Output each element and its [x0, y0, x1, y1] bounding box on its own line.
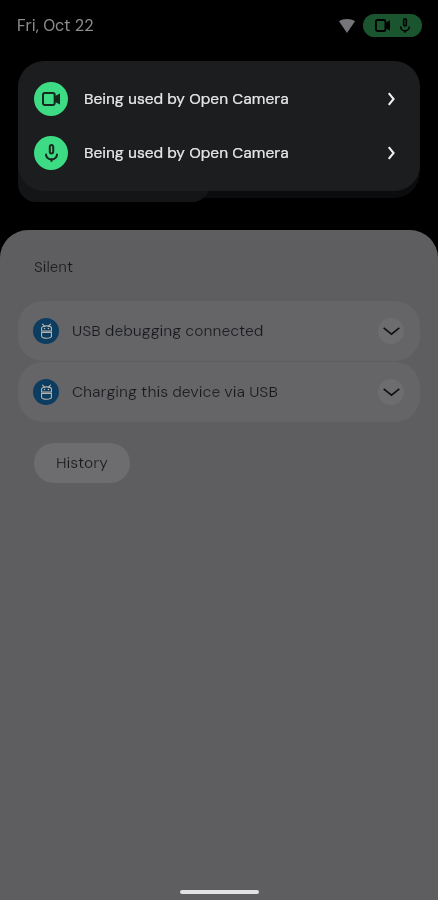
staticText: History: [56, 453, 108, 473]
staticText: Being used by Open Camera: [84, 143, 289, 163]
staticText: Fri, Oct 22: [17, 15, 94, 36]
button[interactable]: USB debugging connected: [18, 301, 420, 361]
button[interactable]: Being used by Open Camera: [18, 72, 420, 126]
button[interactable]: History: [34, 443, 130, 483]
staticText: Being used by Open Camera: [84, 89, 289, 109]
staticText: Silent: [34, 257, 74, 277]
button[interactable]: Charging this device via USB: [18, 362, 420, 422]
staticText: USB debugging connected: [72, 321, 264, 341]
button[interactable]: Being used by Open Camera: [18, 126, 420, 180]
button[interactable]: Camera and microphone in use: [363, 14, 422, 37]
staticText: Charging this device via USB: [72, 382, 278, 402]
